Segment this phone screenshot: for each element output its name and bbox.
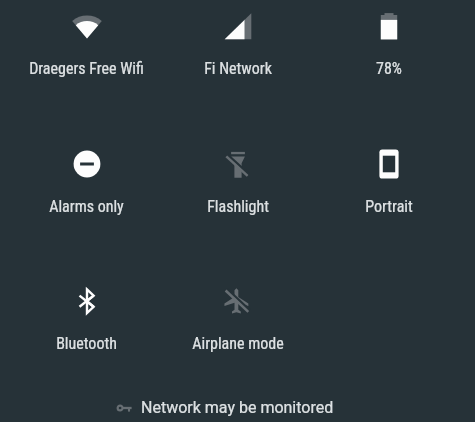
other: Mobile network [220, 11, 256, 41]
other: Bluetooth [69, 286, 105, 316]
staticText: Portrait [365, 197, 413, 216]
staticText: 78% [376, 59, 402, 78]
other: Wi-Fi [69, 11, 105, 41]
other: Battery [371, 11, 407, 41]
other: Auto rotate [371, 149, 407, 179]
staticText: Alarms only [49, 197, 124, 216]
staticText: Draegers Free Wifi [29, 59, 144, 78]
staticText: Network may be monitored [141, 398, 334, 417]
button[interactable]: Wi-Fi [11, 11, 162, 131]
staticText: Airplane mode [192, 334, 284, 353]
staticText: Flashlight [207, 197, 269, 216]
other: Airplane mode [220, 286, 256, 316]
button[interactable]: Airplane mode [162, 286, 313, 406]
button[interactable]: Bluetooth [11, 286, 162, 406]
other: Do not disturb [69, 149, 105, 179]
other: Flashlight [220, 149, 256, 179]
button[interactable]: Auto rotate [313, 149, 464, 269]
button[interactable]: Battery [313, 11, 464, 131]
other: VPN enabled [117, 401, 133, 415]
staticText: Bluetooth [56, 334, 117, 353]
button[interactable]: Network may be monitored [0, 382, 475, 422]
staticText: Fi Network [204, 59, 272, 78]
button[interactable]: Do not disturb [11, 149, 162, 269]
button[interactable]: Flashlight [162, 149, 313, 269]
button[interactable]: Mobile network [162, 11, 313, 131]
